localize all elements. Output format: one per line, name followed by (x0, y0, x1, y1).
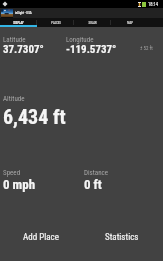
button[interactable]: Statistics (81, 214, 163, 261)
staticText: PLACES (51, 21, 61, 24)
staticText: Latitude (3, 36, 26, 44)
staticText: Speed (3, 169, 21, 177)
other: Notification (2, 1, 8, 7)
button[interactable]: Add Place (0, 214, 81, 261)
staticText: 18:14 (148, 2, 158, 7)
button[interactable]: SOLAR (74, 18, 111, 27)
staticText: 37.7307° (3, 43, 44, 56)
staticText: Altitude (3, 95, 25, 103)
staticText: 0 mph (3, 177, 36, 192)
button[interactable]: DISPLAY (0, 18, 37, 27)
staticText: -119.5737° (66, 43, 117, 56)
button[interactable]: inSight - USA (0, 8, 163, 18)
staticText: Distance (84, 169, 109, 177)
staticText: 0 ft (84, 177, 102, 192)
staticText: 6,434 ft (3, 105, 66, 128)
staticText: Longitude (66, 36, 94, 44)
staticText: ± 52 ft (140, 45, 153, 51)
staticText: MAP (127, 21, 133, 24)
staticText: inSight - USA (15, 11, 32, 15)
staticText: SOLAR (88, 21, 97, 24)
staticText: DISPLAY (13, 21, 24, 24)
staticText: Statistics (105, 232, 139, 243)
staticText: Add Place (23, 232, 59, 243)
button[interactable]: MAP (111, 18, 148, 27)
button[interactable]: PLACES (37, 18, 74, 27)
